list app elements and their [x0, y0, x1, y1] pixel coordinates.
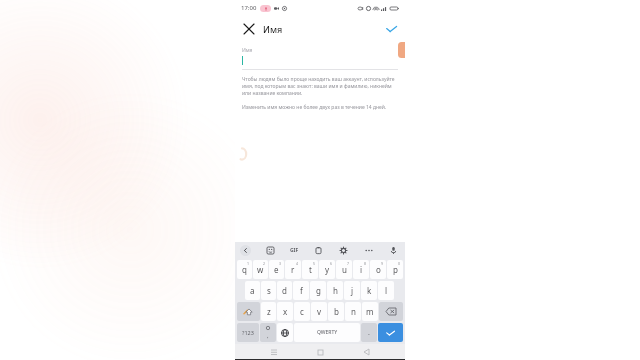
button[interactable]: Назад	[359, 345, 373, 359]
staticText: u	[342, 264, 347, 275]
button[interactable]: b	[328, 302, 344, 321]
button[interactable]: Запятая	[260, 323, 276, 342]
staticText: g	[316, 285, 321, 296]
button[interactable]: Буфер обмена	[313, 245, 324, 256]
staticText: Имя	[263, 23, 283, 35]
button[interactable]: l	[378, 281, 394, 300]
staticText: 2	[263, 261, 266, 266]
staticText: w	[257, 264, 264, 275]
button[interactable]: z	[261, 302, 276, 321]
button[interactable]: v	[311, 302, 327, 321]
staticText: l	[385, 285, 388, 296]
staticText: r	[291, 264, 295, 275]
button[interactable]: Закрыть	[240, 20, 258, 38]
button[interactable]: k	[361, 281, 377, 300]
button[interactable]: j	[344, 281, 360, 300]
staticText: 5	[313, 261, 316, 266]
staticText: Чтобы людям было проще находить ваш акка…	[242, 76, 398, 97]
staticText: n	[351, 306, 356, 317]
staticText: i	[360, 264, 363, 275]
staticText: 9	[381, 261, 384, 266]
button[interactable]: t	[302, 260, 318, 279]
button[interactable]: s	[261, 281, 276, 300]
button[interactable]: m	[362, 302, 378, 321]
staticText: x	[283, 306, 288, 317]
button[interactable]: w	[253, 260, 268, 279]
button[interactable]: x	[277, 302, 293, 321]
button[interactable]: i	[353, 260, 369, 279]
staticText: s	[267, 285, 271, 296]
staticText: 0	[398, 261, 401, 266]
button[interactable]: Удалить	[379, 302, 403, 321]
staticText: c	[300, 306, 304, 317]
button[interactable]: Недавние	[267, 345, 281, 359]
staticText: Имя	[242, 47, 253, 54]
staticText: 8	[364, 261, 367, 266]
button[interactable]: Сохранить	[382, 20, 400, 38]
button[interactable]: a	[245, 281, 260, 300]
button[interactable]: Главный экран	[313, 345, 327, 359]
staticText: 4	[296, 261, 299, 266]
staticText: 7	[347, 261, 350, 266]
staticText: .	[368, 328, 370, 338]
staticText: p	[393, 264, 398, 275]
staticText: d	[282, 285, 287, 296]
button[interactable]: Назад	[240, 245, 251, 256]
staticText: t	[309, 264, 312, 275]
button[interactable]: c	[294, 302, 310, 321]
button[interactable]: d	[277, 281, 292, 300]
staticText: f	[300, 285, 303, 296]
button[interactable]: Shift	[237, 302, 260, 321]
staticText: 3	[279, 261, 282, 266]
staticText: ,	[267, 332, 269, 340]
button[interactable]: Ещё	[363, 245, 374, 256]
button[interactable]: u	[336, 260, 352, 279]
button[interactable]: n	[345, 302, 361, 321]
staticText: e	[274, 264, 279, 275]
staticText: Изменить имя можно не более двух раз в т…	[242, 104, 387, 111]
button[interactable]: r	[285, 260, 301, 279]
button[interactable]: h	[327, 281, 343, 300]
staticText: o	[376, 264, 381, 275]
staticText: k	[367, 285, 372, 296]
button[interactable]: g	[310, 281, 326, 300]
button[interactable]: Готово	[378, 323, 403, 342]
button[interactable]: Стикеры	[265, 245, 276, 256]
button[interactable]: p	[387, 260, 403, 279]
staticText: 6	[330, 261, 333, 266]
button[interactable]: Сменить язык	[277, 323, 293, 342]
staticText: a	[250, 285, 255, 296]
button[interactable]: QWERTY	[294, 323, 360, 342]
staticText: 17:00	[241, 4, 257, 12]
button[interactable]: Голосовой ввод	[388, 245, 399, 256]
staticText: z	[267, 306, 271, 317]
button[interactable]: Настройки	[338, 245, 349, 256]
staticText: ?123	[242, 329, 254, 336]
staticText: m	[366, 306, 374, 317]
staticText: h	[333, 285, 338, 296]
button[interactable]: Имя	[242, 42, 398, 70]
button[interactable]: q	[237, 260, 252, 279]
staticText: j	[351, 285, 354, 296]
staticText: v	[317, 306, 322, 317]
staticText: QWERTY	[317, 329, 338, 336]
button[interactable]: Точка	[361, 323, 377, 342]
button[interactable]: f	[293, 281, 309, 300]
button[interactable]: e	[269, 260, 284, 279]
button[interactable]: ?123	[237, 323, 259, 342]
staticText: q	[242, 264, 247, 275]
staticText: y	[325, 264, 330, 275]
button[interactable]: o	[370, 260, 386, 279]
staticText: b	[334, 306, 339, 317]
staticText: 1	[247, 261, 250, 266]
button[interactable]: y	[319, 260, 335, 279]
button[interactable]: GIF	[290, 247, 299, 254]
